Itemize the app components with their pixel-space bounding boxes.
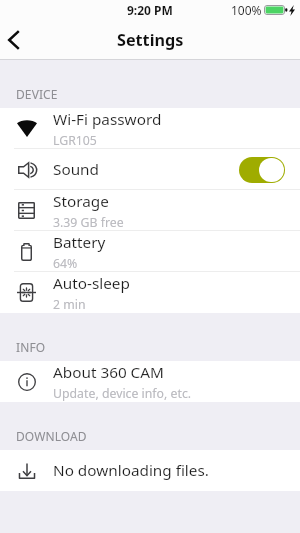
staticText: 9:20 PM xyxy=(127,2,173,18)
button[interactable]: Back xyxy=(0,20,40,60)
staticText: Sound xyxy=(53,159,99,180)
staticText: Battery xyxy=(53,232,106,253)
button[interactable]: Auto-sleep xyxy=(0,272,300,313)
button[interactable]: Storage xyxy=(0,190,300,231)
staticText: Wi-Fi password xyxy=(53,109,162,130)
staticText: 100% xyxy=(231,2,262,18)
button[interactable]: No downloading files. xyxy=(0,450,300,491)
staticText: 3.39 GB free xyxy=(53,214,124,231)
button[interactable]: Battery xyxy=(0,231,300,272)
staticText: About 360 CAM xyxy=(53,362,164,383)
staticText: Update, device info, etc. xyxy=(53,385,192,402)
staticText: Auto-sleep xyxy=(53,273,130,294)
button[interactable]: Sound xyxy=(0,149,300,190)
staticText: 2 min xyxy=(53,296,86,313)
staticText: 64% xyxy=(53,255,78,272)
button[interactable]: About 360 CAM xyxy=(0,361,300,402)
staticText: INFO xyxy=(16,339,46,355)
staticText: DEVICE xyxy=(16,86,58,102)
staticText: DOWNLOAD xyxy=(16,428,87,444)
button[interactable]: Sound toggle xyxy=(239,157,285,183)
staticText: Storage xyxy=(53,191,109,212)
staticText: No downloading files. xyxy=(53,460,209,481)
button[interactable]: Wi-Fi password xyxy=(0,108,300,149)
staticText: Settings xyxy=(117,29,184,51)
staticText: LGR105 xyxy=(53,132,97,149)
